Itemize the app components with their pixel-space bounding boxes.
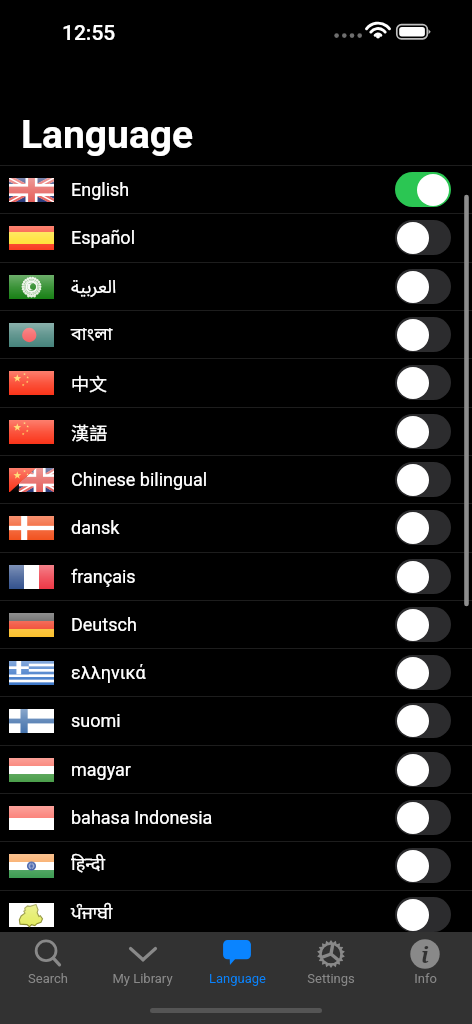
button[interactable]: Disabled bbox=[395, 897, 451, 932]
staticText: Chinese bilingual bbox=[71, 469, 208, 490]
staticText: ਪੰਜਾਬੀ bbox=[71, 903, 113, 926]
button[interactable]: Disabled bbox=[395, 848, 451, 883]
button[interactable]: français bbox=[0, 553, 472, 600]
button[interactable]: My Library bbox=[95, 938, 190, 986]
button[interactable]: Disabled bbox=[395, 462, 451, 497]
staticText: Search bbox=[28, 971, 68, 986]
button[interactable]: i bbox=[378, 938, 472, 986]
button[interactable]: English bbox=[0, 166, 472, 213]
staticText: Info bbox=[414, 971, 437, 986]
button[interactable]: Chinese bilingual bbox=[0, 456, 472, 503]
staticText: বাংলা bbox=[71, 323, 113, 347]
staticText: English bbox=[71, 179, 130, 200]
button[interactable]: العربية bbox=[0, 263, 472, 310]
button[interactable]: हिन्दी bbox=[0, 842, 472, 889]
staticText: français bbox=[71, 566, 136, 587]
button[interactable]: Disabled bbox=[395, 414, 451, 449]
button[interactable]: Disabled bbox=[395, 655, 451, 690]
button[interactable]: Español bbox=[0, 214, 472, 261]
button[interactable]: Disabled bbox=[395, 220, 451, 255]
staticText: Español bbox=[71, 227, 136, 248]
button[interactable]: Disabled bbox=[395, 269, 451, 304]
button[interactable]: suomi bbox=[0, 697, 472, 744]
button[interactable]: Disabled bbox=[395, 800, 451, 835]
button[interactable]: dansk bbox=[0, 504, 472, 551]
button[interactable]: ελληνικά bbox=[0, 649, 472, 696]
staticText: My Library bbox=[112, 971, 173, 986]
button[interactable]: Enabled bbox=[395, 172, 451, 207]
button[interactable]: ਪੰਜਾਬੀ bbox=[0, 891, 472, 938]
button[interactable]: Disabled bbox=[395, 317, 451, 352]
button[interactable]: 中文 bbox=[0, 359, 472, 406]
button[interactable]: Disabled bbox=[395, 607, 451, 642]
staticText: bahasa Indonesia bbox=[71, 807, 213, 828]
staticText: i bbox=[421, 939, 429, 969]
button[interactable]: Settings bbox=[284, 938, 378, 986]
staticText: 漢語 bbox=[71, 419, 107, 445]
button[interactable]: Disabled bbox=[395, 703, 451, 738]
button[interactable]: বাংলা bbox=[0, 311, 472, 358]
button[interactable]: Deutsch bbox=[0, 601, 472, 648]
staticText: العربية bbox=[71, 268, 117, 306]
staticText: Settings bbox=[307, 971, 355, 986]
staticText: dansk bbox=[71, 517, 120, 538]
staticText: Deutsch bbox=[71, 614, 137, 635]
staticText: 中文 bbox=[71, 370, 107, 396]
button[interactable]: 漢語 bbox=[0, 408, 472, 455]
staticText: ελληνικά bbox=[71, 662, 146, 683]
button[interactable]: Disabled bbox=[395, 510, 451, 545]
staticText: Language bbox=[209, 971, 266, 986]
staticText: हिन्दी bbox=[71, 854, 106, 877]
staticText: Language bbox=[21, 112, 194, 158]
staticText: suomi bbox=[71, 710, 121, 731]
button[interactable]: Disabled bbox=[395, 365, 451, 400]
button[interactable]: Search bbox=[0, 938, 95, 986]
button[interactable]: Disabled bbox=[395, 752, 451, 787]
button[interactable]: Disabled bbox=[395, 559, 451, 594]
staticText: 12:55 bbox=[62, 21, 116, 46]
staticText: magyar bbox=[71, 759, 131, 780]
button[interactable]: bahasa Indonesia bbox=[0, 794, 472, 841]
button[interactable]: magyar bbox=[0, 746, 472, 793]
button[interactable]: Language bbox=[190, 938, 284, 986]
